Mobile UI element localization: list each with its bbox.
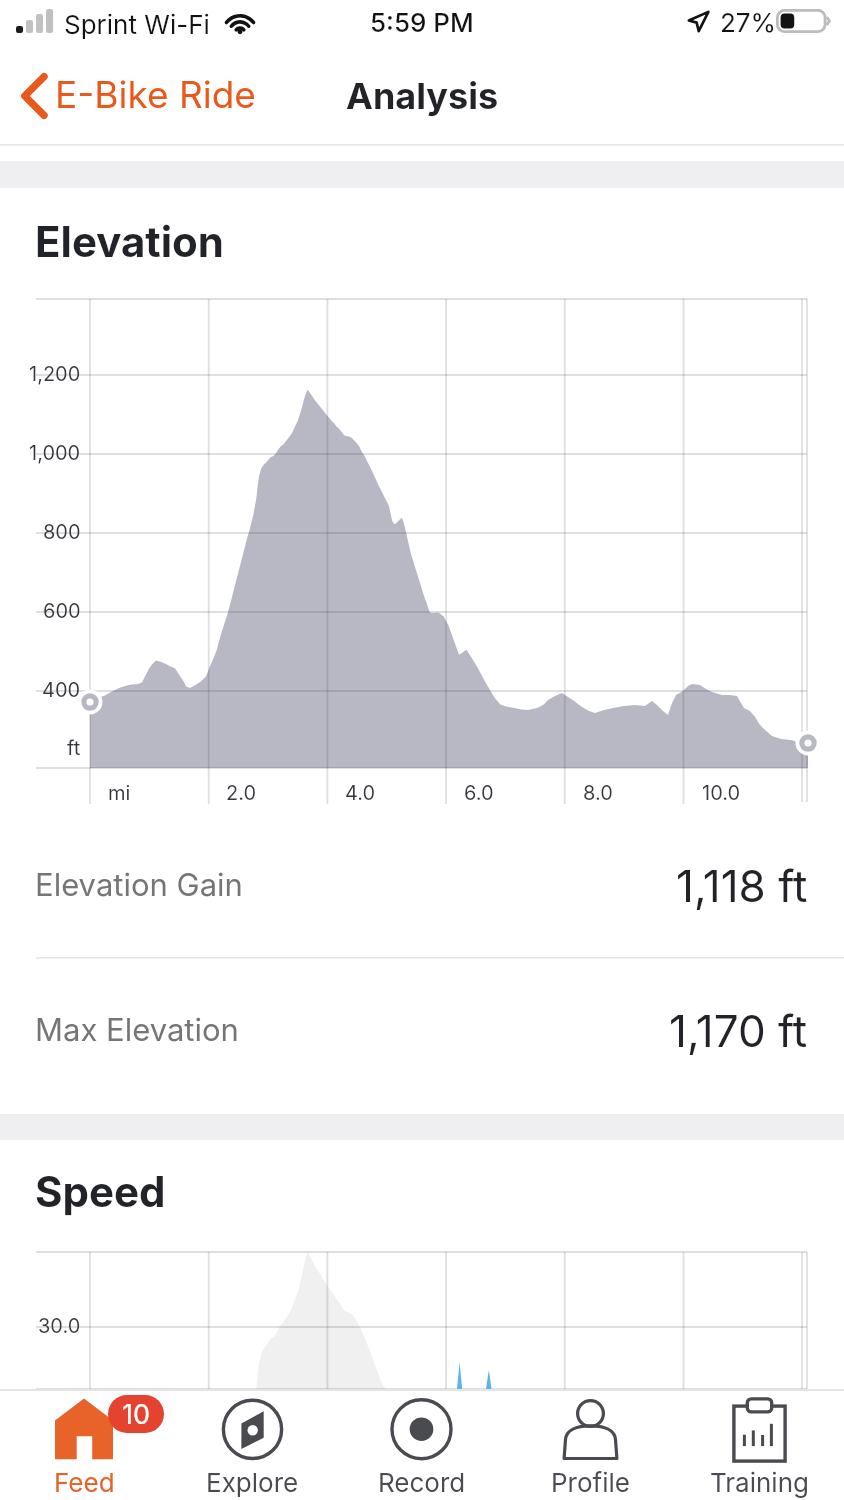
staticText: 1,170 ft: [669, 1004, 808, 1057]
staticText: Profile: [551, 1467, 630, 1498]
staticText: ft: [67, 736, 81, 760]
staticText: 27%: [720, 7, 777, 38]
staticText: Sprint Wi-Fi: [64, 9, 210, 40]
staticText: Feed: [54, 1467, 115, 1498]
other: Profile: [506, 1389, 675, 1500]
staticText: 800: [43, 520, 81, 544]
staticText: Training: [710, 1467, 809, 1498]
staticText: 10.0: [702, 781, 741, 805]
staticText: 1,200: [29, 362, 81, 386]
button[interactable]: Training: [675, 1389, 844, 1500]
staticText: 4.0: [345, 781, 376, 805]
staticText: Elevation Gain: [35, 866, 243, 904]
staticText: mi: [108, 781, 131, 805]
button[interactable]: Profile: [506, 1389, 675, 1500]
staticText: Explore: [206, 1467, 299, 1498]
button[interactable]: 10: [0, 1389, 168, 1500]
staticText: 400: [42, 678, 81, 702]
staticText: Elevation: [35, 216, 224, 267]
button[interactable]: E-Bike Ride: [0, 63, 270, 129]
staticText: 30.0: [38, 1314, 81, 1338]
button[interactable]: Record: [337, 1389, 506, 1500]
staticText: E-Bike Ride: [55, 72, 256, 117]
staticText: 10: [122, 1398, 151, 1431]
button[interactable]: Elevation Gain: [0, 835, 844, 935]
staticText: 1,118 ft: [676, 859, 808, 912]
staticText: 5:59 PM: [370, 7, 474, 38]
staticText: Max Elevation: [35, 1011, 239, 1049]
button[interactable]: Max Elevation: [0, 980, 844, 1080]
other: Record: [337, 1389, 506, 1500]
staticText: Analysis: [346, 74, 499, 118]
staticText: Speed: [35, 1166, 166, 1217]
other: Explore: [168, 1389, 337, 1500]
staticText: 8.0: [583, 781, 613, 805]
other: Training: [675, 1389, 844, 1500]
staticText: 1,000: [29, 441, 81, 465]
staticText: 600: [43, 599, 81, 623]
staticText: 2.0: [226, 781, 257, 805]
staticText: Record: [378, 1467, 466, 1498]
button[interactable]: Explore: [168, 1389, 337, 1500]
staticText: 6.0: [464, 781, 494, 805]
